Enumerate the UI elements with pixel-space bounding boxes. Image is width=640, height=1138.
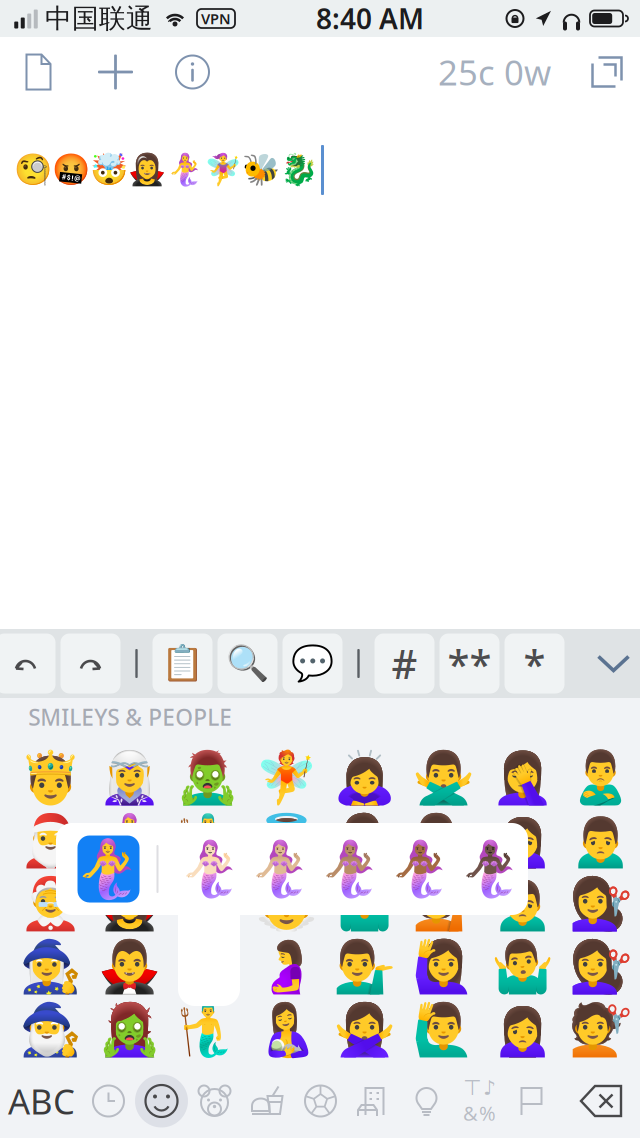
button[interactable]: 👼 <box>247 809 326 872</box>
staticText: 📋 <box>161 644 204 683</box>
button[interactable]: Objects <box>400 1071 453 1131</box>
button[interactable]: 💁‍♂️ <box>404 809 483 872</box>
button[interactable]: 🙍‍♀️ <box>483 809 561 872</box>
staticText: 💇‍♀️ <box>569 938 632 995</box>
button[interactable]: Mermaid, medium skin tone <box>315 837 385 901</box>
button[interactable]: * <box>504 633 564 693</box>
button[interactable]: Mermaid, default skin tone <box>77 835 139 902</box>
staticText: 🧜‍♂️ <box>176 812 239 869</box>
staticText: 💇 <box>569 1001 632 1058</box>
button[interactable]: Recently used <box>82 1071 135 1131</box>
button[interactable]: 🙎‍♂️ <box>561 746 640 809</box>
staticText: 🤱 <box>255 1001 318 1058</box>
button[interactable]: 🤰 <box>247 935 326 998</box>
button[interactable]: 🙋‍♂️ <box>404 998 483 1061</box>
staticText: 🙍‍♂️ <box>491 875 554 932</box>
button[interactable]: 🧛‍♀️ <box>90 872 168 935</box>
button[interactable]: 🤷‍♀️ <box>326 809 404 872</box>
staticText: 🙋‍♀️ <box>412 938 475 995</box>
button[interactable]: 📋 <box>152 633 212 693</box>
button[interactable]: 🧛‍♂️ <box>90 935 168 998</box>
staticText: 🧙‍♀️ <box>19 938 82 995</box>
button[interactable]: Smileys and People <box>135 1071 188 1131</box>
button[interactable]: 💇‍♀️ <box>561 935 640 998</box>
staticText: 🎅 <box>19 812 82 869</box>
button[interactable]: 🎅 <box>11 809 90 872</box>
button[interactable]: 🧟‍♀️ <box>90 998 168 1061</box>
staticText: 🧐🤬🤯🧛‍♀️🧜‍♀️🧚‍♀️🐝🐉 <box>14 152 318 187</box>
button[interactable]: 🤦‍♀️ <box>483 746 561 809</box>
button[interactable]: Symbols <box>453 1071 506 1131</box>
button[interactable]: Travel and Places <box>347 1071 400 1131</box>
button[interactable]: 🧜 <box>168 872 247 935</box>
button[interactable]: Food and Drink <box>241 1071 294 1131</box>
staticText: 🧜🏼‍♀️ <box>247 838 313 899</box>
button[interactable]: Delete <box>569 1070 633 1132</box>
button[interactable]: 💁 <box>404 872 483 935</box>
button[interactable]: ** <box>439 633 499 693</box>
button[interactable]: Mermaid, dark skin tone <box>455 837 525 901</box>
staticText: # <box>391 637 417 690</box>
button[interactable]: 💇 <box>561 998 640 1061</box>
button[interactable]: 🧜‍♀️ <box>90 809 168 872</box>
button[interactable]: Activity <box>294 1071 347 1131</box>
button[interactable]: New document <box>0 37 77 107</box>
staticText: 🔍 <box>226 644 269 683</box>
button[interactable]: 🤶 <box>11 872 90 935</box>
button[interactable]: 🧟‍♂️ <box>168 746 247 809</box>
button[interactable]: Hide keyboard <box>582 633 640 693</box>
button[interactable] <box>60 633 120 693</box>
button[interactable]: 🙍‍♂️ <box>483 872 561 935</box>
staticText: VPN <box>201 9 231 28</box>
staticText: 🧜🏽‍♀️ <box>317 838 383 899</box>
button[interactable]: Mermaid, medium-light skin tone <box>245 837 315 901</box>
button[interactable]: 🔍 <box>217 633 277 693</box>
button[interactable]: 🧙‍♂️ <box>11 998 90 1061</box>
button[interactable]: 🤱 <box>247 998 326 1061</box>
staticText: & <box>463 1100 478 1126</box>
button[interactable] <box>0 633 55 693</box>
button[interactable]: # <box>374 633 434 693</box>
staticText: 🧜🏻‍♀️ <box>177 838 243 899</box>
staticText: 🙇‍♀️ <box>333 749 396 806</box>
staticText: 👼 <box>255 812 318 869</box>
button[interactable]: Add <box>77 37 154 107</box>
staticText: 👼 <box>255 875 318 932</box>
button[interactable]: 💁‍♂️ <box>326 935 404 998</box>
button[interactable]: Animals and Nature <box>188 1071 241 1131</box>
staticText: 🙍‍♀️ <box>491 812 554 869</box>
button[interactable]: 🤷‍♂️ <box>326 872 404 935</box>
button[interactable]: 🙋‍♀️ <box>404 935 483 998</box>
button[interactable]: 🙅‍♀️ <box>326 998 404 1061</box>
button[interactable]: 🧚 <box>247 746 326 809</box>
button[interactable]: 🧜‍♂️ <box>168 809 247 872</box>
button[interactable]: Mermaid, light skin tone <box>175 837 245 901</box>
button[interactable]: ABC <box>1 1070 82 1132</box>
button[interactable]: Mermaid, medium-dark skin tone <box>385 837 455 901</box>
button[interactable]: 👼 <box>247 872 326 935</box>
staticText: 🧙‍♂️ <box>19 1001 82 1058</box>
button[interactable]: 🧜‍♂️ <box>168 998 247 1061</box>
button[interactable]: 🙍‍♂️ <box>561 809 640 872</box>
button[interactable]: 🧝‍♀️ <box>90 746 168 809</box>
staticText: 🧜‍♂️ <box>176 1001 239 1058</box>
button[interactable]: 💇‍♀️ <box>561 872 640 935</box>
button[interactable]: 🤷‍♂️ <box>483 935 561 998</box>
button[interactable]: Info <box>154 37 231 107</box>
button[interactable]: 💬 <box>282 633 342 693</box>
staticText: 🤶 <box>19 875 82 932</box>
button[interactable]: 🤴 <box>11 746 90 809</box>
staticText: 🧟‍♂️ <box>176 749 239 806</box>
staticText: 🤰 <box>255 938 318 995</box>
staticText: 🧛‍♂️ <box>98 938 161 995</box>
button[interactable]: Expand <box>579 37 635 107</box>
button[interactable]: 🙇‍♀️ <box>326 746 404 809</box>
button[interactable]: 🙍‍♀️ <box>483 998 561 1061</box>
staticText: 🙅‍♂️ <box>412 749 475 806</box>
button[interactable]: 🧜‍♂️ <box>168 935 247 998</box>
button[interactable]: 🙅‍♂️ <box>404 746 483 809</box>
button[interactable]: 🧙‍♀️ <box>11 935 90 998</box>
staticText: 🤷‍♀️ <box>333 812 396 869</box>
button[interactable]: Flags <box>506 1071 559 1131</box>
